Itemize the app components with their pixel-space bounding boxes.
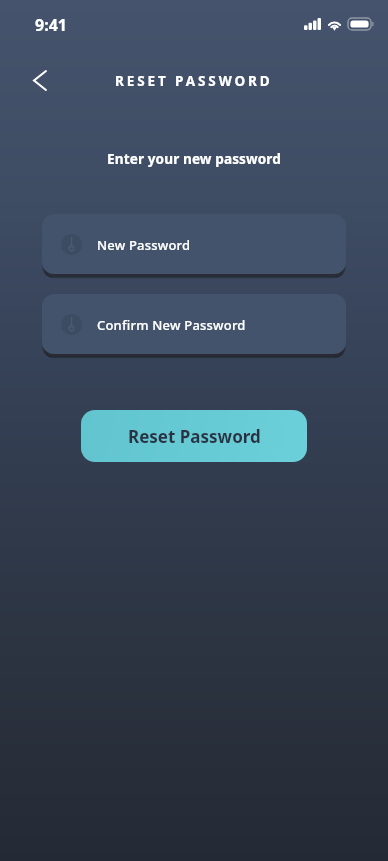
staticText: RESET PASSWORD (115, 72, 273, 90)
staticText: New Password (97, 236, 191, 254)
button[interactable]: Back (20, 60, 60, 100)
button[interactable]: Reset Password (81, 410, 307, 462)
staticText: Reset Password (128, 425, 261, 448)
staticText: Enter your new password (0, 149, 388, 168)
button[interactable]: Confirm New Password (42, 294, 346, 354)
staticText: 9:41 (35, 14, 67, 36)
button[interactable]: New Password (42, 214, 346, 274)
staticText: Confirm New Password (97, 316, 246, 334)
